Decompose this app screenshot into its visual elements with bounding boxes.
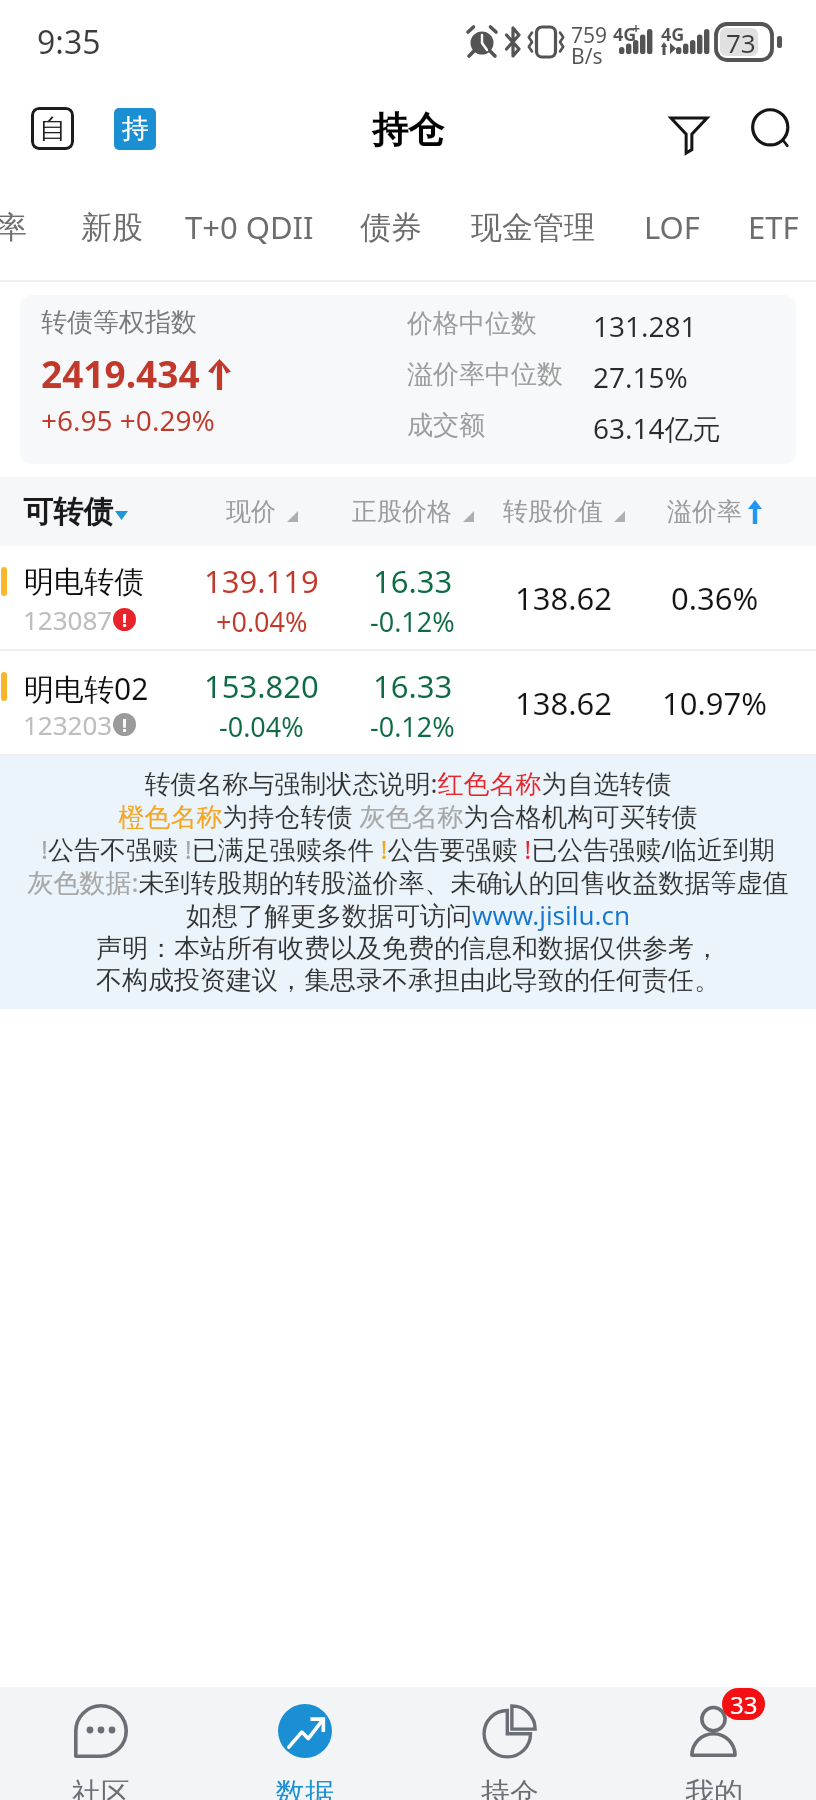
staticText: 持仓 xyxy=(481,1775,539,1800)
button[interactable]: 溢价率 xyxy=(639,477,790,546)
staticText: 123203 xyxy=(23,707,113,742)
button[interactable]: 33 xyxy=(612,1687,816,1800)
staticText: 社区 xyxy=(72,1775,130,1800)
staticText: 2419.434 xyxy=(41,348,200,398)
staticText: 27.15% xyxy=(593,358,688,396)
staticText: 138.62 xyxy=(515,682,612,724)
staticText: 759 xyxy=(571,21,608,50)
button[interactable]: 正股价格 xyxy=(337,477,488,546)
staticText: 债券 xyxy=(360,208,422,247)
staticText: ! xyxy=(122,713,128,736)
button[interactable]: 债券 xyxy=(343,177,438,277)
button[interactable]: 明电转02 xyxy=(0,651,816,754)
staticText: -0.04% xyxy=(219,708,304,745)
staticText: 自 xyxy=(39,112,66,146)
staticText: ! xyxy=(122,608,128,631)
staticText: 持仓 xyxy=(372,107,444,152)
staticText: 16.33 xyxy=(373,560,453,602)
staticText: 4G xyxy=(613,22,637,47)
staticText: +6.95 +0.29% xyxy=(41,401,215,439)
staticText: -0.12% xyxy=(370,708,455,745)
button[interactable]: 率 xyxy=(0,177,46,277)
staticText: 明电转债 xyxy=(24,563,144,601)
button[interactable]: 持 xyxy=(114,108,156,150)
staticText: 139.119 xyxy=(204,560,319,602)
staticText: 持 xyxy=(122,112,149,146)
button[interactable]: ETF xyxy=(731,177,815,277)
staticText: 可转债 xyxy=(23,493,113,531)
staticText: B/s xyxy=(571,42,603,71)
staticText: 正股价格 xyxy=(352,496,452,527)
staticText: 我的 xyxy=(685,1775,743,1800)
staticText: + xyxy=(632,19,641,38)
button[interactable]: 现金管理 xyxy=(455,177,611,277)
staticText: 明电转02 xyxy=(24,668,149,709)
staticText: 33 xyxy=(730,1688,758,1720)
staticText: 成交额 xyxy=(407,409,485,442)
staticText: LOF xyxy=(644,206,700,248)
button[interactable]: 现价 xyxy=(186,477,337,546)
staticText: 转债等权指数 xyxy=(41,306,197,339)
staticText: 4G xyxy=(661,22,685,47)
staticText: ETF xyxy=(748,206,799,248)
staticText: 现金管理 xyxy=(471,208,595,247)
button[interactable]: 自 xyxy=(31,107,74,150)
staticText: 新股 xyxy=(81,208,143,247)
button[interactable]: LOF xyxy=(629,177,715,277)
staticText: -0.12% xyxy=(370,603,455,640)
button[interactable]: 明电转债 xyxy=(0,546,816,649)
staticText: 73 xyxy=(726,25,756,60)
staticText: 153.820 xyxy=(204,665,319,707)
button[interactable]: 数据 xyxy=(203,1687,407,1800)
staticText: 转股价值 xyxy=(503,496,603,527)
staticText: 价格中位数 xyxy=(407,307,537,340)
staticText: 数据 xyxy=(276,1775,334,1800)
staticText: 9:35 xyxy=(37,20,101,64)
staticText: T+0 QDII xyxy=(185,206,314,248)
staticText: 138.62 xyxy=(515,577,612,619)
staticText: 现价 xyxy=(226,496,276,527)
staticText: 63.14亿元 xyxy=(593,409,721,447)
button[interactable]: T+0 QDII xyxy=(175,177,323,277)
staticText: 131.281 xyxy=(593,307,697,345)
button[interactable]: 持仓 xyxy=(408,1687,612,1800)
button[interactable]: 新股 xyxy=(64,177,159,277)
staticText: 溢价率 xyxy=(667,496,742,527)
staticText: 转债名称与强制状态说明:红色名称为自选转债 橙色名称为持仓转债 灰色名称为合格机… xyxy=(0,768,816,997)
button[interactable] xyxy=(20,295,796,464)
button[interactable]: Filter xyxy=(658,101,720,163)
staticText: 16.33 xyxy=(373,665,453,707)
staticText: 123087 xyxy=(23,602,113,637)
staticText: 溢价率中位数 xyxy=(407,358,563,391)
staticText: 0.36% xyxy=(671,577,759,619)
staticText: 10.97% xyxy=(662,682,767,724)
button[interactable]: 可转债 xyxy=(23,477,163,546)
staticText: +0.04% xyxy=(216,603,308,640)
staticText: 率 xyxy=(0,208,27,247)
button[interactable]: 社区 xyxy=(0,1687,203,1800)
button[interactable]: 转股价值 xyxy=(488,477,639,546)
button[interactable]: Search xyxy=(741,99,803,161)
